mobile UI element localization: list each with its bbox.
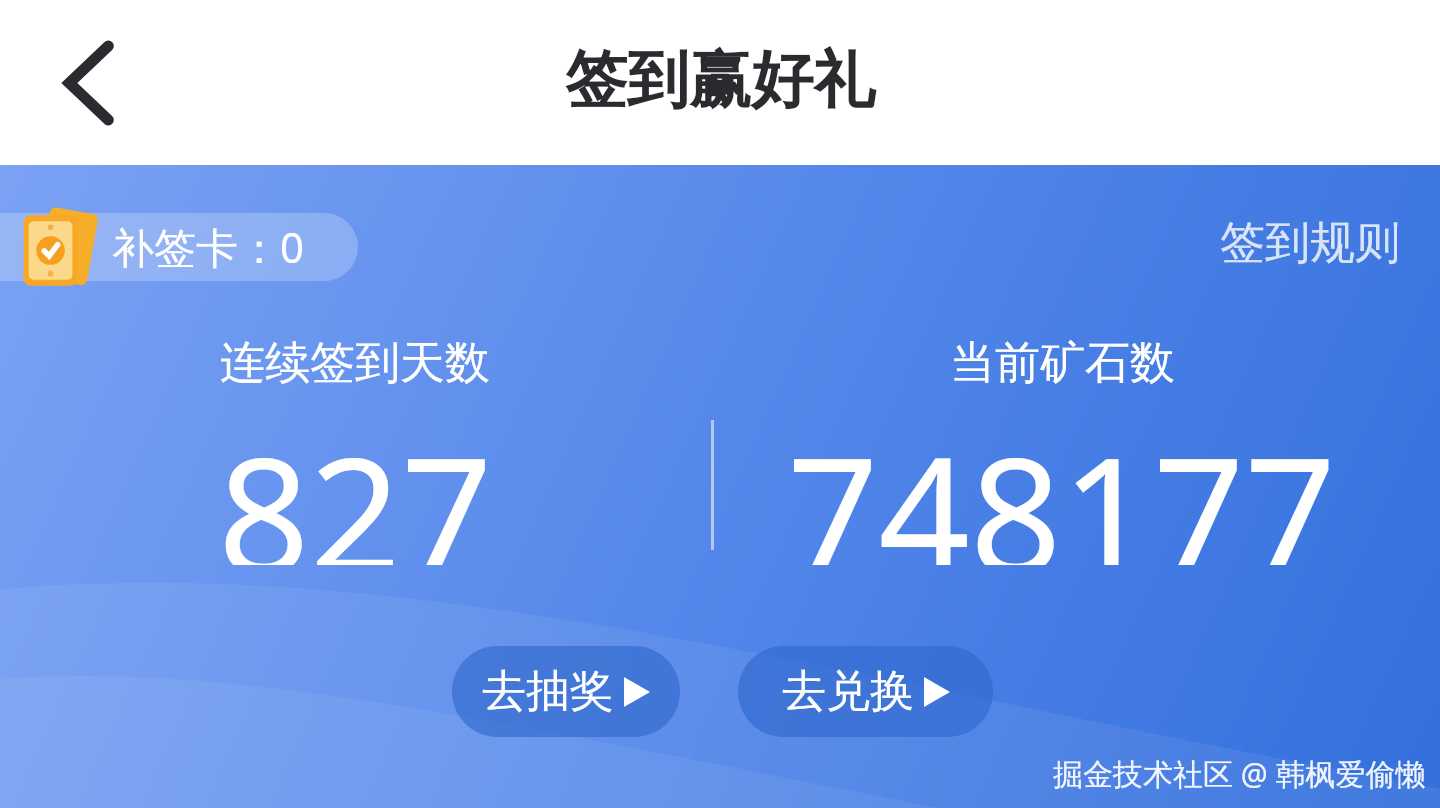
staticText: 748177 xyxy=(787,402,1337,565)
staticText: 掘金技术社区 @ 韩枫爱偷懒 xyxy=(1053,753,1426,794)
button[interactable]: 去兑换 xyxy=(738,646,993,737)
staticText: 补签卡：0 xyxy=(112,218,305,275)
staticText: 当前矿石数 xyxy=(950,335,1175,392)
button[interactable]: 去抽奖 xyxy=(452,646,680,737)
button[interactable]: Back xyxy=(48,31,152,135)
staticText: 827 xyxy=(218,402,493,565)
staticText: 连续签到天数 xyxy=(220,335,490,392)
staticText: 去抽奖 xyxy=(482,664,614,719)
button[interactable]: 签到规则 xyxy=(1220,215,1400,272)
staticText: 去兑换 xyxy=(782,664,914,719)
staticText: 签到赢好礼 xyxy=(565,41,875,119)
button[interactable]: 补签卡：0 xyxy=(0,213,358,281)
